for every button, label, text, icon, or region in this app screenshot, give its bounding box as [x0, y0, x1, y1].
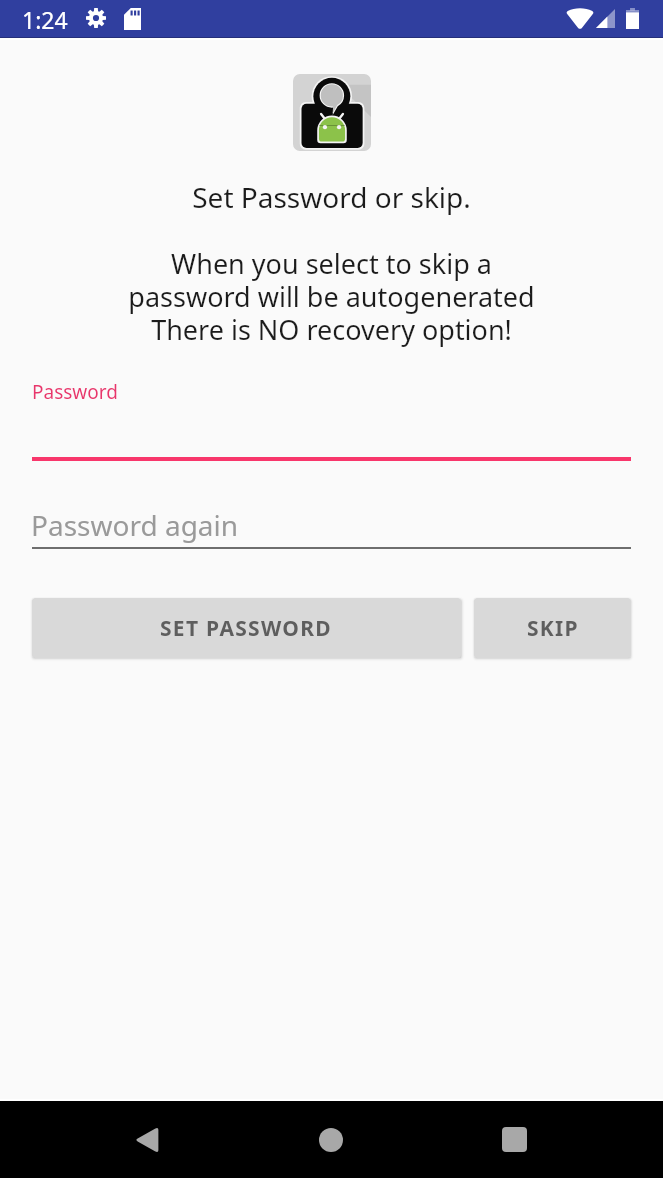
staticText: SET PASSWORD	[160, 614, 333, 643]
button[interactable]: Recent apps	[491, 1101, 537, 1178]
staticText: When you select to skip a password will …	[0, 245, 663, 348]
staticText: Password	[32, 379, 118, 405]
button[interactable]: Home	[308, 1101, 354, 1178]
staticText: SKIP	[527, 614, 579, 643]
button[interactable]: Back	[124, 1101, 170, 1178]
button[interactable]: SKIP	[474, 598, 631, 658]
staticText: Set Password or skip.	[0, 178, 663, 216]
staticText: 1:24	[22, 4, 68, 35]
button[interactable]: Password	[32, 372, 631, 462]
button[interactable]: Password again	[32, 500, 631, 549]
staticText: Password again	[31, 506, 239, 544]
button[interactable]: SET PASSWORD	[32, 598, 461, 658]
